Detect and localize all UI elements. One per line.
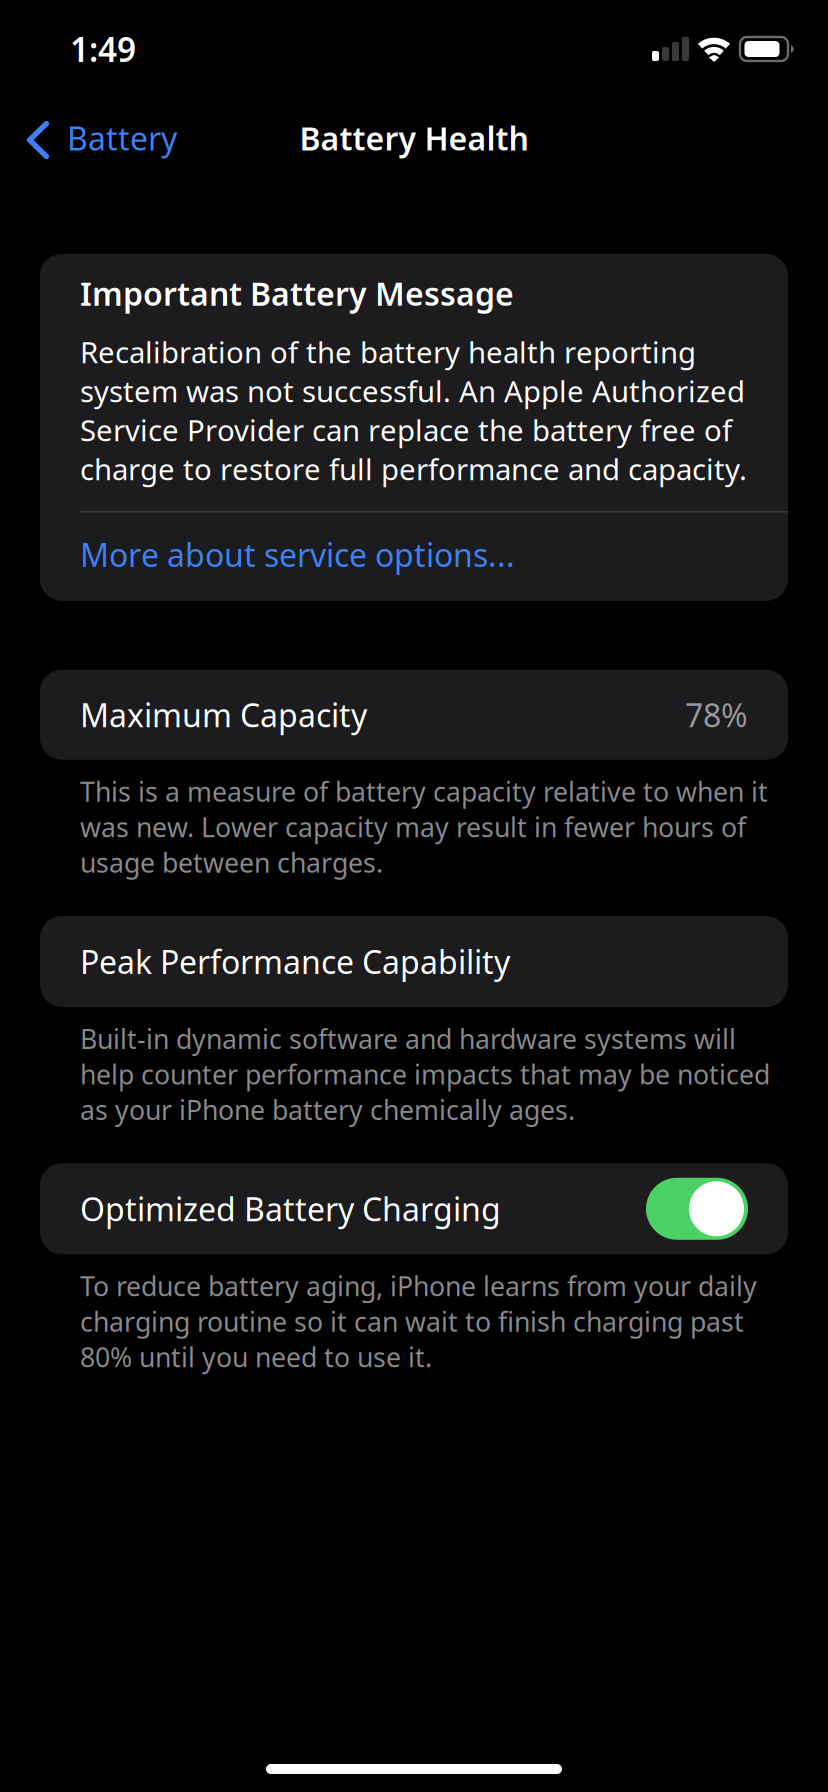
button[interactable]: Maximum Capacity (0, 670, 828, 760)
button[interactable]: More about service options... (40, 512, 788, 601)
staticText: Optimized Battery Charging (80, 1187, 501, 1230)
staticText: Built-in dynamic software and hardware s… (80, 1021, 770, 1127)
staticText: This is a measure of battery capacity re… (80, 774, 768, 880)
button[interactable]: Peak Performance Capability (0, 916, 828, 1007)
staticText: Peak Performance Capability (80, 940, 510, 983)
staticText: Important Battery Message (80, 272, 514, 314)
staticText: 1:49 (70, 27, 136, 71)
staticText: Battery (67, 117, 177, 159)
button[interactable]: Optimized Battery Charging (0, 1163, 828, 1254)
button[interactable]: Battery (0, 105, 193, 171)
staticText: Maximum Capacity (80, 694, 367, 736)
staticText: 78% (685, 694, 748, 736)
staticText: Recalibration of the battery health repo… (80, 332, 747, 488)
staticText: To reduce battery aging, iPhone learns f… (80, 1268, 757, 1374)
staticText: Battery Health (299, 117, 528, 159)
staticText: More about service options... (80, 533, 515, 576)
